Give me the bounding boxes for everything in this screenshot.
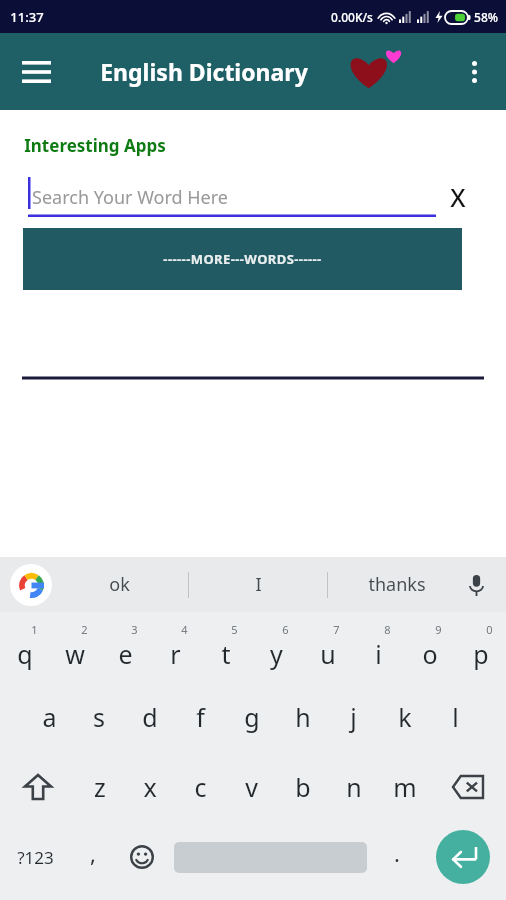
staticText: e xyxy=(118,637,133,671)
button[interactable]: Space xyxy=(167,822,374,892)
staticText: h xyxy=(295,700,311,734)
button[interactable]: ok xyxy=(50,557,188,612)
staticText: m xyxy=(393,770,417,804)
staticText: i xyxy=(375,637,382,671)
staticText: 1 xyxy=(31,622,38,637)
staticText: Search Your Word Here xyxy=(32,185,228,210)
button[interactable]: c xyxy=(175,752,226,822)
button[interactable]: 6 xyxy=(251,618,302,682)
staticText: 3 xyxy=(131,622,138,637)
staticText: 4 xyxy=(181,622,188,637)
staticText: j xyxy=(350,700,357,734)
button[interactable]: a xyxy=(24,682,74,752)
button[interactable]: l xyxy=(430,682,481,752)
button[interactable]: Emoji xyxy=(116,822,167,892)
button[interactable]: Shift xyxy=(0,752,75,822)
staticText: . xyxy=(394,838,400,868)
staticText: f xyxy=(196,700,205,734)
staticText: t xyxy=(221,637,231,671)
staticText: c xyxy=(194,770,207,804)
button[interactable]: 1 xyxy=(0,618,50,682)
button[interactable]: s xyxy=(74,682,124,752)
button[interactable]: . xyxy=(374,822,420,892)
staticText: 58% xyxy=(474,9,498,25)
staticText: ok xyxy=(109,572,130,597)
button[interactable]: v xyxy=(226,752,277,822)
button[interactable]: Clear text xyxy=(436,175,480,219)
button[interactable]: Enter xyxy=(420,822,506,892)
button[interactable]: 8 xyxy=(353,618,404,682)
button[interactable]: z xyxy=(75,752,125,822)
staticText: q xyxy=(17,637,33,671)
staticText: z xyxy=(94,770,106,804)
staticText: p xyxy=(473,637,489,671)
staticText: 2 xyxy=(81,622,88,637)
button[interactable]: g xyxy=(226,682,277,752)
button[interactable]: m xyxy=(379,752,430,822)
button[interactable]: 4 xyxy=(150,618,200,682)
button[interactable]: 3 xyxy=(100,618,150,682)
staticText: 0 xyxy=(486,622,493,637)
staticText: l xyxy=(452,700,459,734)
button[interactable]: 2 xyxy=(50,618,100,682)
staticText: w xyxy=(65,637,85,671)
staticText: n xyxy=(346,770,362,804)
staticText: g xyxy=(244,700,260,734)
button[interactable]: n xyxy=(328,752,379,822)
staticText: s xyxy=(93,700,105,734)
staticText: v xyxy=(245,770,258,804)
button[interactable]: Open navigation menu xyxy=(16,52,56,92)
button[interactable]: b xyxy=(277,752,328,822)
button[interactable]: 7 xyxy=(302,618,353,682)
button[interactable]: x xyxy=(125,752,175,822)
staticText: u xyxy=(320,637,336,671)
staticText: 6 xyxy=(282,622,289,637)
staticText: English Dictionary xyxy=(100,56,308,87)
staticText: x xyxy=(143,770,157,804)
staticText: y xyxy=(270,637,283,671)
staticText: X xyxy=(450,180,466,214)
staticText: 11:37 xyxy=(10,8,44,26)
staticText: , xyxy=(90,838,96,868)
button[interactable]: ------MORE---WORDS------ xyxy=(23,228,462,290)
staticText: 8 xyxy=(384,622,391,637)
button[interactable]: k xyxy=(379,682,430,752)
button[interactable]: h xyxy=(277,682,328,752)
staticText: b xyxy=(295,770,311,804)
button[interactable]: I xyxy=(189,557,327,612)
button[interactable]: Search Your Word Here xyxy=(28,177,436,217)
staticText: k xyxy=(398,700,412,734)
button[interactable]: More options xyxy=(454,52,494,92)
staticText: 9 xyxy=(435,622,442,637)
button[interactable]: Google search xyxy=(10,564,52,606)
button[interactable]: Voice input xyxy=(458,567,494,603)
staticText: o xyxy=(422,637,438,671)
staticText: 0.00K/s xyxy=(331,9,373,25)
button[interactable]: f xyxy=(175,682,226,752)
staticText: ?123 xyxy=(17,846,54,869)
staticText: Interesting Apps xyxy=(24,134,166,157)
button[interactable]: j xyxy=(328,682,379,752)
staticText: a xyxy=(42,700,57,734)
staticText: ------MORE---WORDS------ xyxy=(163,250,322,268)
button[interactable]: 5 xyxy=(200,618,251,682)
staticText: r xyxy=(170,637,181,671)
staticText: d xyxy=(142,700,158,734)
staticText: 7 xyxy=(333,622,340,637)
button[interactable]: 9 xyxy=(404,618,455,682)
button[interactable]: d xyxy=(124,682,175,752)
button[interactable]: 0 xyxy=(455,618,506,682)
staticText: thanks xyxy=(368,572,426,597)
button[interactable]: thanks xyxy=(328,557,466,612)
button[interactable]: Favourites xyxy=(344,41,406,103)
staticText: 5 xyxy=(231,622,238,637)
button[interactable]: , xyxy=(70,822,116,892)
button[interactable]: ?123 xyxy=(0,822,70,892)
staticText: I xyxy=(255,572,262,597)
button[interactable]: Backspace xyxy=(430,752,506,822)
